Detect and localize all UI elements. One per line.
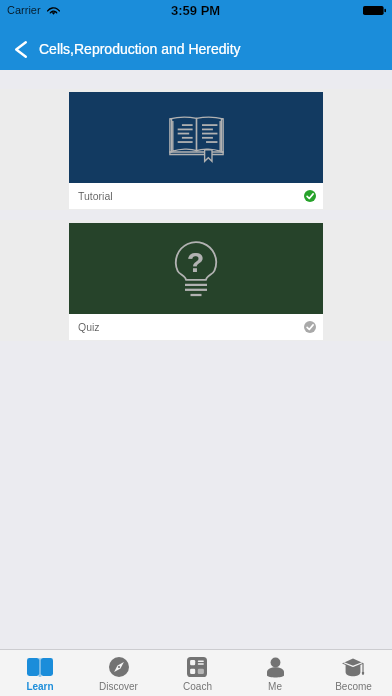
staticText: Tutorial [78,190,113,202]
button[interactable]: Tutorial [0,89,392,210]
button[interactable]: Coach [158,650,236,696]
button[interactable]: Learn [0,650,79,696]
button[interactable]: Back [0,28,39,70]
staticText: Become [335,681,372,692]
button[interactable]: ? [0,220,392,341]
button[interactable]: Discover [79,650,158,696]
staticText: Quiz [78,321,100,333]
staticText: Learn [26,681,54,692]
staticText: Discover [99,681,138,692]
staticText: ? [187,247,205,278]
staticText: Me [268,681,282,692]
button[interactable]: Become [314,650,392,696]
staticText: Carrier [7,4,41,16]
staticText: 3:59 PM [171,3,221,18]
button[interactable]: Me [236,650,314,696]
staticText: Cells,Reproduction and Heredity [39,41,241,57]
staticText: Coach [183,681,212,692]
